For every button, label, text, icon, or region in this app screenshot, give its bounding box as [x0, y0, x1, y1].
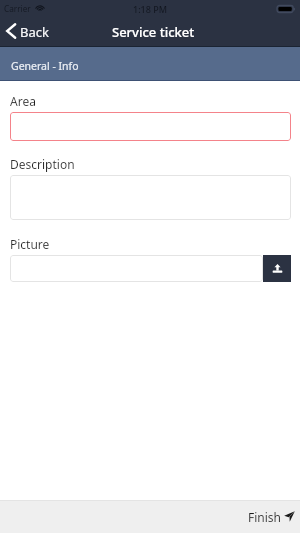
button[interactable]: Finish [234, 500, 300, 533]
staticText: 1:18 PM [133, 3, 167, 15]
staticText: Picture [10, 236, 50, 252]
staticText: Service ticket [112, 23, 195, 41]
button[interactable]: Picture path [10, 255, 263, 282]
button[interactable]: General - Info [0, 46, 300, 81]
button[interactable]: Area input [10, 112, 291, 141]
button[interactable]: Description input [10, 175, 291, 220]
button[interactable]: Back [0, 17, 57, 46]
staticText: Back [20, 23, 49, 41]
button[interactable]: Upload picture [263, 255, 291, 282]
staticText: Area [10, 93, 36, 109]
staticText: Carrier [4, 3, 31, 14]
staticText: General - Info [11, 59, 79, 73]
staticText: Description [10, 156, 75, 172]
staticText: Finish [248, 509, 282, 525]
